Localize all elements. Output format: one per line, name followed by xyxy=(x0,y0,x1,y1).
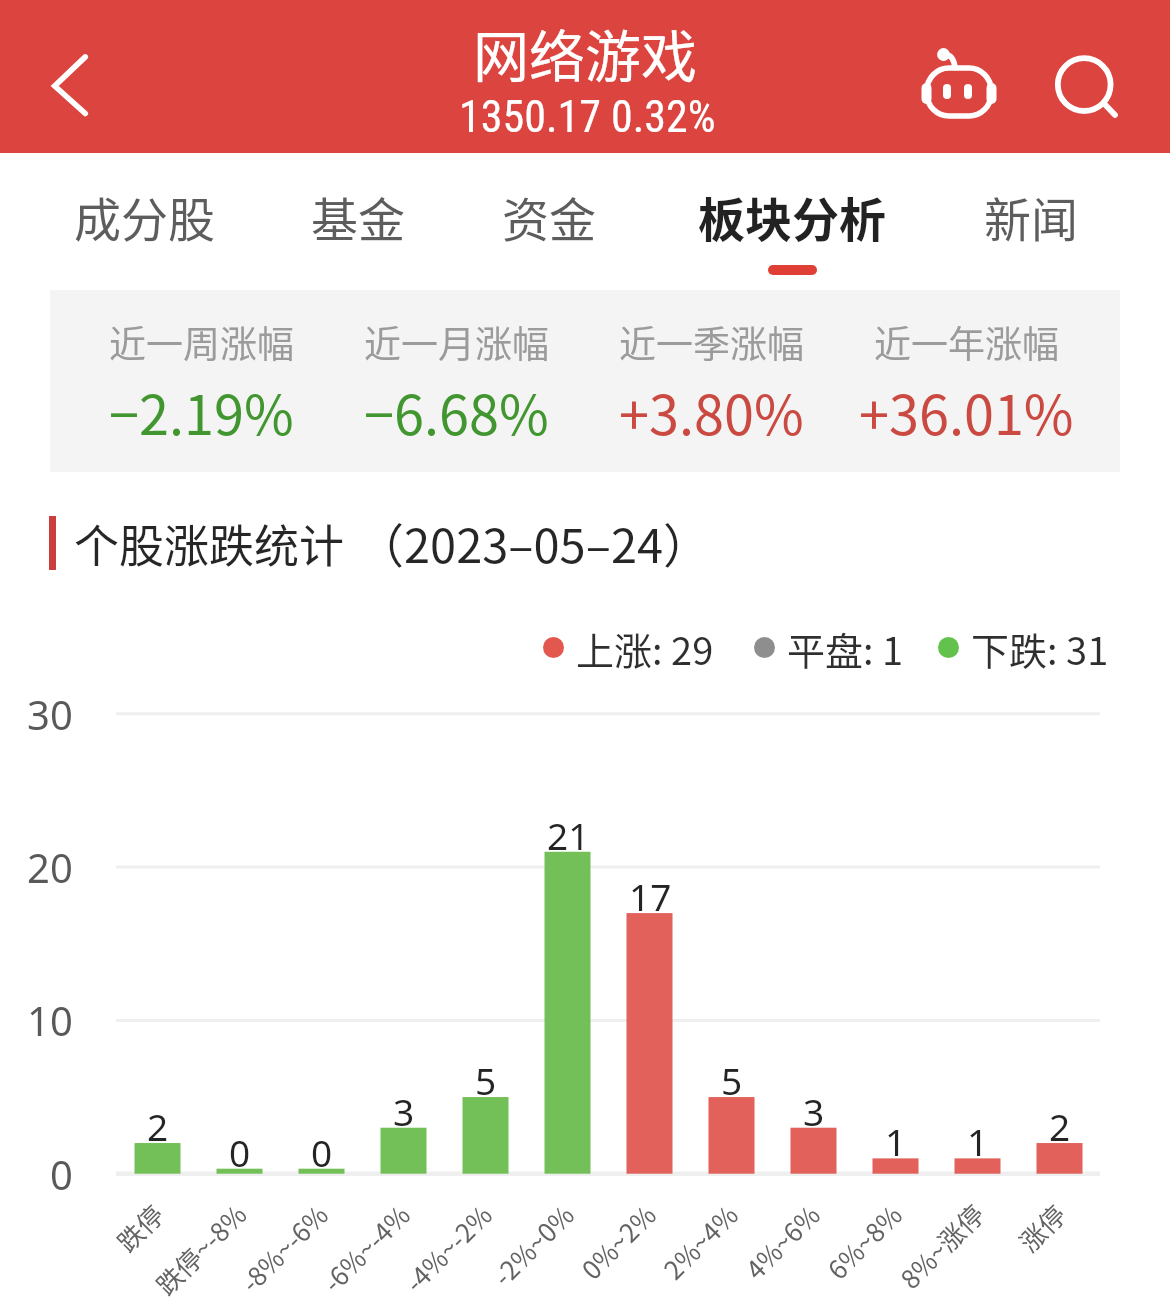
staticText: 0 xyxy=(229,1127,251,1177)
button[interactable]: 下跌: 31 xyxy=(932,621,1152,673)
staticText: -6%~-4% xyxy=(313,1195,417,1298)
staticText: 近一月涨幅 xyxy=(364,315,549,369)
button[interactable]: 平盘: 1 xyxy=(748,621,968,673)
staticText: 10 xyxy=(27,993,73,1047)
staticText: 跌停~-8% xyxy=(147,1195,253,1301)
staticText: 2 xyxy=(147,1101,169,1151)
staticText: 基金 xyxy=(311,182,405,250)
button[interactable]: 成分股 xyxy=(52,181,237,299)
staticText: 近一周涨幅 xyxy=(109,315,294,369)
staticText: 新闻 xyxy=(984,182,1078,250)
staticText: 近一季涨幅 xyxy=(619,315,804,369)
staticText: 上涨: 29 xyxy=(576,621,714,673)
staticText: +3.80% xyxy=(619,372,804,450)
staticText: 资金 xyxy=(502,182,596,250)
button[interactable]: AI assistant xyxy=(912,44,996,128)
staticText: 网络游戏 xyxy=(473,12,697,93)
staticText: -4%~-2% xyxy=(395,1195,499,1298)
staticText: 个股涨跌统计 xyxy=(74,511,345,576)
staticText: 近一年涨幅 xyxy=(874,315,1059,369)
staticText: 2%~4% xyxy=(654,1195,745,1286)
button[interactable]: 资金 xyxy=(479,181,619,299)
staticText: -2%~0% xyxy=(484,1195,581,1292)
button[interactable]: 基金 xyxy=(288,181,428,299)
button[interactable]: 板块分析 xyxy=(677,181,907,299)
staticText: 5 xyxy=(475,1055,497,1105)
staticText: −2.19% xyxy=(109,372,294,450)
staticText: 2 xyxy=(1049,1101,1071,1151)
staticText: 涨停 xyxy=(1010,1195,1073,1258)
staticText: 平盘: 1 xyxy=(787,621,904,673)
staticText: 21 xyxy=(547,810,590,860)
staticText: 0%~2% xyxy=(572,1195,663,1286)
staticText: 8%~涨停 xyxy=(891,1195,991,1295)
button[interactable]: 新闻 xyxy=(961,181,1101,299)
staticText: 20 xyxy=(27,840,73,894)
button[interactable]: Back xyxy=(28,40,86,98)
staticText: −6.68% xyxy=(364,372,549,450)
staticText: 0 xyxy=(311,1127,333,1177)
staticText: 板块分析 xyxy=(698,182,886,250)
staticText: 6%~8% xyxy=(818,1195,909,1286)
staticText: 3 xyxy=(803,1086,825,1136)
staticText: 1350.17 0.32% xyxy=(459,91,716,143)
button[interactable]: Search xyxy=(1048,44,1124,120)
staticText: 0 xyxy=(50,1147,73,1201)
staticText: 跌停 xyxy=(108,1195,171,1258)
staticText: 3 xyxy=(393,1086,415,1136)
staticText: 1 xyxy=(967,1116,989,1166)
staticText: -8%~-6% xyxy=(231,1195,335,1298)
staticText: 成分股 xyxy=(74,182,215,250)
staticText: 下跌: 31 xyxy=(971,621,1109,673)
staticText: 4%~6% xyxy=(736,1195,827,1286)
button[interactable]: 上涨: 29 xyxy=(537,621,757,673)
staticText: 30 xyxy=(27,687,73,741)
staticText: 1 xyxy=(885,1116,907,1166)
staticText: （2023–05–24） xyxy=(357,508,711,576)
staticText: +36.01% xyxy=(859,372,1074,450)
staticText: 5 xyxy=(721,1055,743,1105)
staticText: 17 xyxy=(629,871,672,921)
